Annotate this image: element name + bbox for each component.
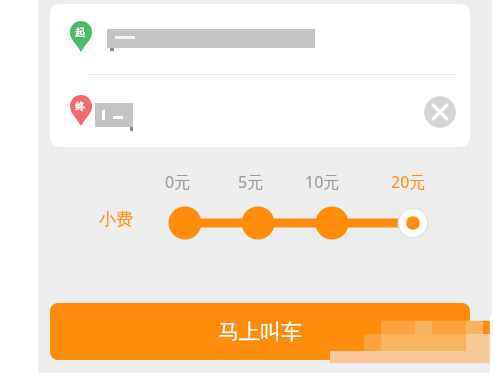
staticText: 20元 — [391, 171, 426, 193]
button[interactable]: 起 — [50, 4, 470, 75]
staticText: 0元 — [165, 171, 191, 193]
staticText: 起 — [75, 26, 85, 39]
staticText: 10元 — [305, 171, 340, 193]
button[interactable]: 终 — [50, 75, 470, 147]
button[interactable]: Tip amount slider — [160, 200, 440, 246]
staticText: 马上叫车 — [218, 319, 302, 345]
staticText: 小费 — [99, 209, 133, 230]
button[interactable]: Clear destination — [424, 96, 456, 128]
staticText: 5元 — [238, 171, 264, 193]
staticText: 终 — [75, 100, 85, 113]
button[interactable]: 马上叫车 — [50, 303, 470, 360]
